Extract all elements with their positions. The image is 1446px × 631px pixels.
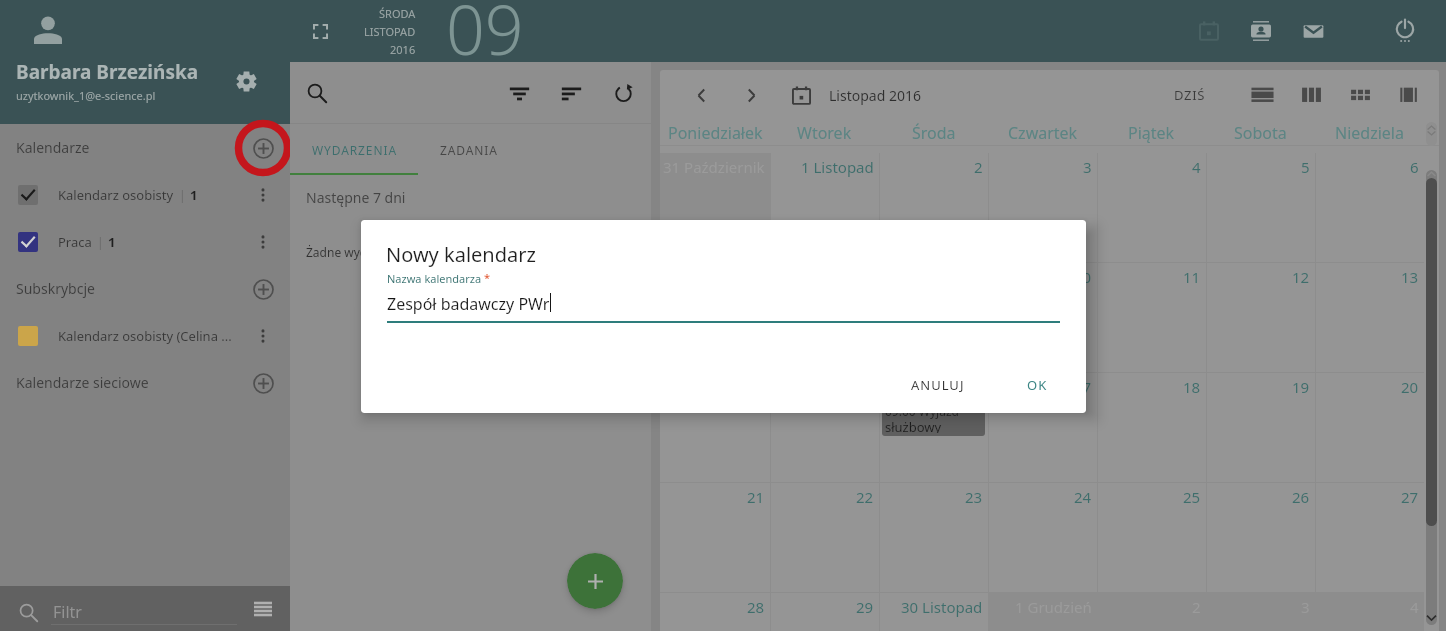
button[interactable]: Day view	[1242, 75, 1282, 115]
staticText: 2	[1192, 597, 1201, 617]
button[interactable]: Fullscreen	[298, 9, 342, 53]
button[interactable]: Mail	[1289, 7, 1337, 55]
button[interactable]: More options	[243, 175, 283, 215]
button[interactable]: 16	[879, 373, 988, 482]
button[interactable]: ZADANIA	[418, 124, 520, 175]
button[interactable]: 15	[770, 373, 879, 482]
button[interactable]: Kalendarze	[0, 124, 290, 171]
button[interactable]: WYDARZENIA	[290, 124, 418, 175]
button[interactable]: 12	[1206, 263, 1315, 372]
button[interactable]: Subskrybcje	[0, 265, 290, 312]
button[interactable]: 9	[879, 263, 988, 372]
button[interactable]: Add event	[567, 553, 623, 609]
button[interactable]: 24	[988, 483, 1097, 592]
staticText: 5	[1301, 157, 1310, 177]
staticText: 4	[1410, 597, 1419, 617]
button[interactable]: 30 Listopad	[879, 593, 988, 631]
button[interactable]: 8	[770, 263, 879, 372]
button[interactable]: 5	[1206, 153, 1315, 262]
staticText: |	[97, 234, 104, 250]
button[interactable]: 29	[770, 593, 879, 631]
button[interactable]: Calendar	[1185, 7, 1233, 55]
button[interactable]: 23	[879, 483, 988, 592]
button[interactable]: 31 Październik	[660, 153, 770, 262]
button[interactable]: Filter	[497, 71, 541, 115]
button[interactable]: Contacts	[1237, 7, 1285, 55]
staticText: 09	[446, 0, 524, 75]
button[interactable]: 14	[660, 373, 770, 482]
button[interactable]: 19	[1206, 373, 1315, 482]
button[interactable]: 10	[988, 263, 1097, 372]
button[interactable]: Menu	[244, 590, 282, 628]
button[interactable]: 28	[660, 593, 770, 631]
button[interactable]: 13	[1315, 263, 1424, 372]
staticText: ANULUJ	[911, 376, 965, 394]
button[interactable]: More options	[243, 316, 283, 356]
staticText: 19	[1292, 377, 1310, 397]
staticText: 1 Listopad	[801, 157, 874, 177]
staticText: Subskrybcje	[16, 279, 95, 298]
button[interactable]: 7	[660, 263, 770, 372]
button[interactable]: 11	[1097, 263, 1206, 372]
button[interactable]: Refresh	[601, 71, 645, 115]
staticText: Zespół badawczy PWr	[387, 293, 550, 315]
button[interactable]: 20	[1315, 373, 1424, 482]
button[interactable]: More options	[243, 222, 283, 262]
staticText: Kalendarze	[16, 138, 90, 157]
button[interactable]: 4	[1097, 153, 1206, 262]
button[interactable]: Agenda view	[1389, 75, 1429, 115]
button[interactable]: OK	[1013, 368, 1062, 402]
button[interactable]: 21	[660, 483, 770, 592]
staticText: Piątek	[1128, 122, 1175, 144]
button[interactable]: 09:00 Wyjazd	[882, 405, 985, 436]
button[interactable]: 26	[1206, 483, 1315, 592]
button[interactable]: Settings	[224, 59, 268, 103]
staticText: 25	[1183, 487, 1201, 507]
button[interactable]: 27	[1315, 483, 1424, 592]
staticText: Żadne wydarzenia nie zostały znalezione	[306, 244, 534, 260]
button[interactable]: Search	[295, 71, 339, 115]
staticText: 20	[1401, 377, 1419, 397]
staticText: Czwartek	[1008, 122, 1078, 144]
staticText: WYDARZENIA	[312, 142, 397, 158]
button[interactable]: Power	[1381, 7, 1429, 55]
button[interactable]: 2	[879, 153, 988, 262]
button[interactable]: Kalendarz osobisty (Celina ...	[0, 312, 290, 359]
button[interactable]: Pick date	[782, 76, 820, 114]
staticText: uzytkownik_1@e-science.pl	[16, 88, 156, 103]
button[interactable]: 1 Listopad	[770, 153, 879, 262]
button[interactable]: Next month	[732, 76, 770, 114]
staticText: Poniedziałek	[668, 122, 763, 144]
button[interactable]: 17	[988, 373, 1097, 482]
staticText: 3	[1083, 157, 1092, 177]
staticText: 1	[108, 233, 116, 251]
button[interactable]: Sort	[549, 71, 593, 115]
button[interactable]: Praca	[0, 218, 290, 265]
staticText: 3	[1301, 597, 1310, 617]
button[interactable]: Kalendarz osobisty	[0, 171, 290, 218]
button[interactable]: DZIŚ	[1164, 78, 1216, 112]
button[interactable]: Previous month	[682, 76, 720, 114]
button[interactable]: Week view	[1291, 75, 1331, 115]
staticText: 1	[190, 186, 198, 204]
button[interactable]: 25	[1097, 483, 1206, 592]
staticText: 21	[747, 487, 765, 507]
button[interactable]: Kalendarze sieciowe	[0, 359, 290, 406]
staticText: 23	[965, 487, 983, 507]
button[interactable]: 18	[1097, 373, 1206, 482]
button[interactable]: Month view	[1340, 75, 1380, 115]
staticText: 30 Listopad	[901, 597, 983, 617]
button[interactable]: 3	[988, 153, 1097, 262]
staticText: 6	[1410, 157, 1419, 177]
button[interactable]: ANULUJ	[897, 368, 979, 402]
button[interactable]: 22	[770, 483, 879, 592]
button[interactable]: 6	[1315, 153, 1424, 262]
staticText: OK	[1027, 376, 1048, 394]
staticText: 2016	[390, 42, 416, 57]
staticText: 28	[747, 597, 765, 617]
